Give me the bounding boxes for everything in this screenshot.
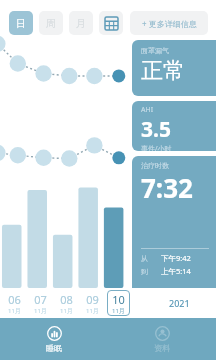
staticText: + 更多详细信息	[142, 18, 197, 29]
staticText: 11月	[112, 307, 125, 315]
staticText: 资料	[154, 343, 170, 353]
staticText: 11月	[60, 307, 73, 315]
staticText: 11月	[86, 307, 99, 315]
button[interactable]: 周	[39, 11, 63, 35]
staticText: 治疗时数	[141, 161, 169, 170]
button[interactable]: 月	[69, 11, 93, 35]
staticText: 月	[76, 17, 86, 30]
staticText: 10	[112, 292, 125, 307]
button[interactable]: 08	[53, 288, 79, 318]
staticText: 到	[141, 267, 148, 276]
staticText: 06	[8, 292, 21, 307]
button[interactable]: 治疗时数	[132, 156, 216, 288]
button[interactable]: 日	[9, 11, 33, 35]
staticText: 2021	[169, 297, 190, 309]
staticText: 07	[34, 292, 47, 307]
button[interactable]: 睡眠	[0, 318, 108, 360]
button[interactable]: + 更多详细信息	[130, 11, 208, 35]
staticText: 上午5:14	[161, 266, 191, 276]
button[interactable]: 09	[79, 288, 105, 318]
staticText: 周	[46, 17, 56, 30]
button[interactable]: 06	[1, 288, 27, 318]
staticText: 下午9:42	[161, 253, 191, 263]
staticText: 从	[141, 254, 148, 263]
staticText: AHI	[141, 105, 154, 115]
staticText: 08	[60, 292, 73, 307]
button[interactable]: 日历	[99, 11, 123, 35]
staticText: 日	[16, 17, 26, 30]
staticText: 11月	[34, 307, 47, 315]
button[interactable]: 07	[27, 288, 53, 318]
button[interactable]: 10	[105, 288, 131, 318]
staticText: 睡眠	[46, 343, 62, 353]
staticText: 事件/小时	[141, 144, 172, 151]
staticText: 09	[86, 292, 99, 307]
button[interactable]: 面罩漏气	[132, 40, 216, 96]
staticText: 7:32	[141, 170, 193, 205]
staticText: 面罩漏气	[141, 46, 169, 55]
button[interactable]: AHI	[132, 101, 216, 151]
staticText: 11月	[8, 307, 21, 315]
staticText: 3.5	[141, 115, 171, 144]
button[interactable]: 资料	[108, 318, 216, 360]
staticText: 正常	[141, 57, 185, 85]
